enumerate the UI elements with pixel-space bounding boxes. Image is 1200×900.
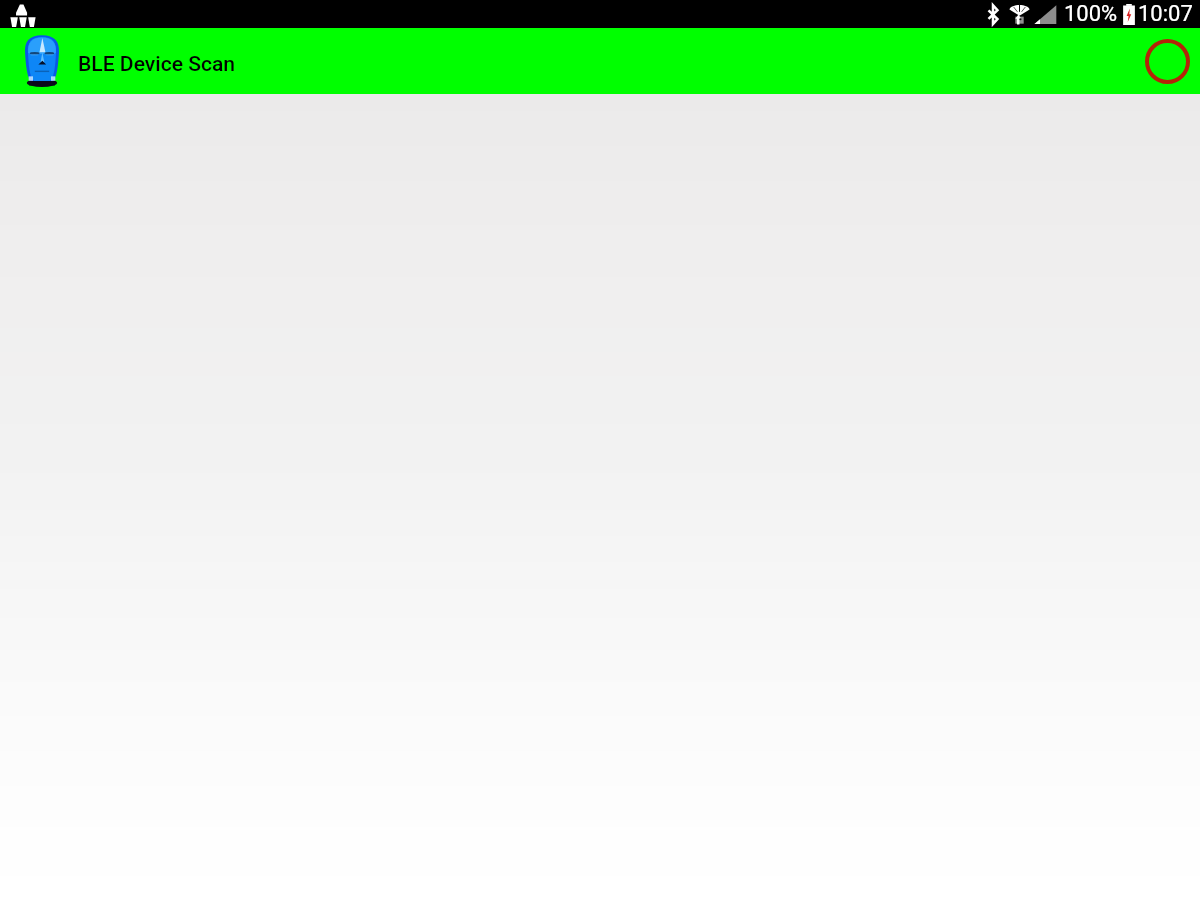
staticText: 10:07 [1138, 1, 1193, 27]
staticText: BLE Device Scan [78, 51, 236, 76]
button[interactable]: Scan for devices [1141, 35, 1193, 87]
staticText: 100% [1064, 1, 1118, 27]
button[interactable]: BLE Device Scan [0, 28, 236, 94]
